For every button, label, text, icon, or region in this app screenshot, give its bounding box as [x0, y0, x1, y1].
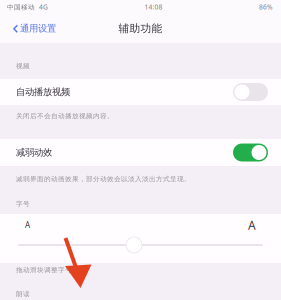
staticText: 86%: [259, 3, 273, 11]
staticText: 拖动滑块调整字号大小。: [16, 266, 93, 274]
staticText: 通用设置: [20, 23, 56, 34]
staticText: 字号: [16, 200, 30, 208]
staticText: 中国移动 4G: [7, 3, 48, 11]
button[interactable]: 文字大小: [0, 236, 281, 254]
staticText: 减弱动效: [16, 147, 52, 158]
staticText: 自动播放视频: [16, 86, 70, 98]
staticText: 关闭后不会自动播放视频内容。: [16, 112, 114, 120]
staticText: A: [25, 220, 30, 230]
staticText: A: [248, 217, 256, 233]
staticText: 视频: [16, 62, 30, 70]
button[interactable]: 通用设置: [0, 14, 66, 43]
staticText: 辅助功能: [118, 22, 162, 35]
button[interactable]: 减弱动效: [0, 139, 281, 166]
staticText: 14:08: [144, 3, 162, 11]
button[interactable]: 自动播放视频: [0, 79, 281, 105]
staticText: 朗读: [16, 290, 30, 298]
staticText: 减弱界面的动画效果，部分动效会以淡入淡出方式呈现。: [16, 175, 191, 183]
